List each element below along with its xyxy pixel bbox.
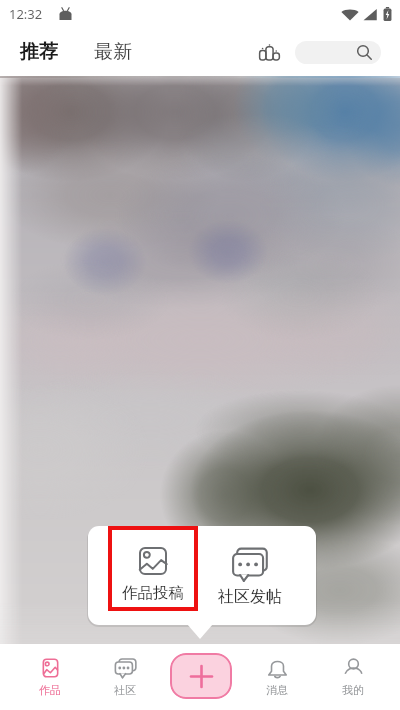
staticText: 最新 bbox=[94, 40, 132, 64]
button[interactable]: 作品投稿 bbox=[109, 526, 197, 625]
staticText: 社区发帖 bbox=[218, 587, 282, 607]
staticText: 我的 bbox=[342, 683, 364, 697]
button[interactable]: 社区 bbox=[87, 644, 163, 710]
staticText: 作品投稿 bbox=[122, 583, 184, 603]
staticText: 作品 bbox=[39, 683, 61, 697]
button[interactable]: 我的 bbox=[315, 644, 391, 710]
button[interactable]: 最新 bbox=[90, 36, 136, 68]
staticText: 推荐 bbox=[20, 40, 58, 64]
button[interactable]: Add bbox=[170, 653, 232, 699]
button[interactable]: 社区发帖 bbox=[206, 526, 294, 625]
button[interactable]: 作品 bbox=[12, 644, 88, 710]
button[interactable]: 推荐 bbox=[0, 36, 64, 68]
staticText: 12:32 bbox=[9, 5, 43, 23]
button[interactable]: 消息 bbox=[239, 644, 315, 710]
button[interactable]: Ranking bbox=[254, 37, 284, 67]
staticText: 消息 bbox=[266, 683, 288, 697]
button[interactable]: Search bbox=[295, 41, 381, 64]
staticText: 社区 bbox=[114, 683, 136, 697]
